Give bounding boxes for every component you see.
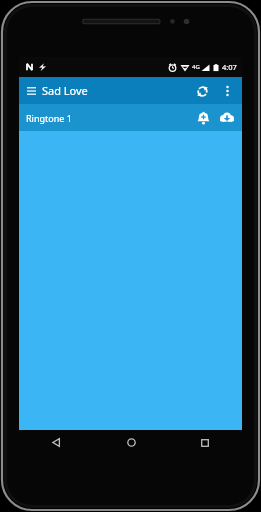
button[interactable]: Set as ringtone bbox=[192, 107, 214, 129]
staticText: 4G bbox=[192, 63, 200, 71]
button[interactable]: More options bbox=[216, 80, 238, 102]
button[interactable]: Home bbox=[94, 430, 168, 455]
staticText: 4:07 bbox=[222, 62, 237, 72]
button[interactable]: Back bbox=[19, 430, 94, 455]
button[interactable]: Recent apps bbox=[168, 430, 242, 455]
button[interactable]: Refresh bbox=[190, 79, 214, 103]
button[interactable]: Download bbox=[216, 107, 238, 129]
button[interactable]: Open navigation drawer bbox=[23, 83, 39, 99]
button[interactable]: Ringtone 1 bbox=[19, 104, 242, 131]
staticText: Ringtone 1 bbox=[26, 112, 72, 124]
staticText: Sad Love bbox=[42, 83, 88, 98]
